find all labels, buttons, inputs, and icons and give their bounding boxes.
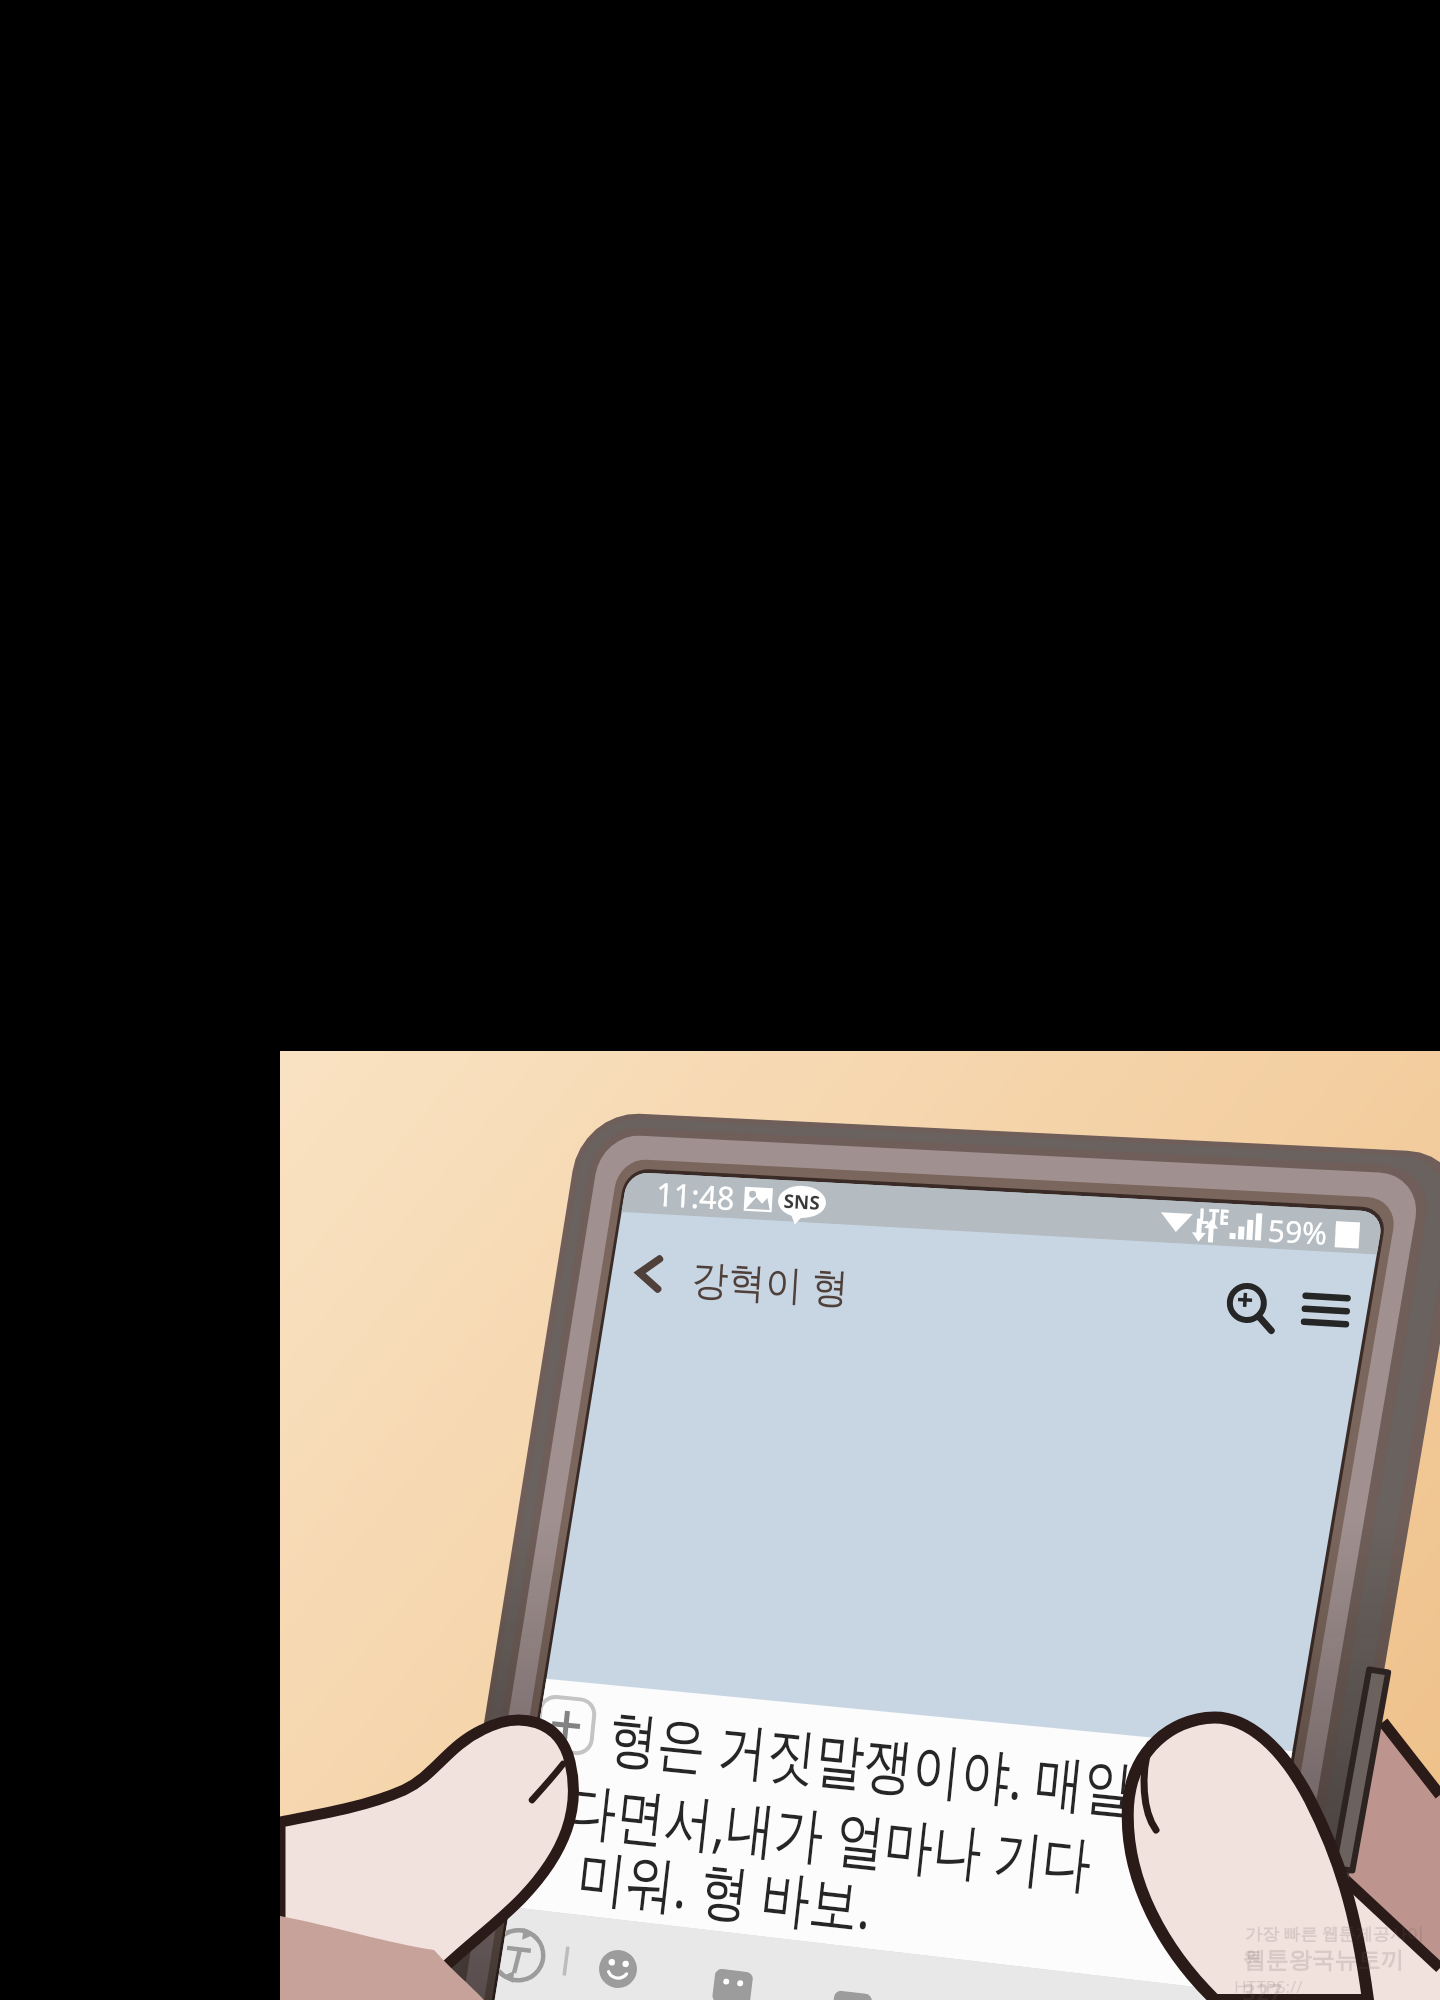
button[interactable]: Comic panel: hands holding a phone showi… — [0, 0, 1440, 2000]
